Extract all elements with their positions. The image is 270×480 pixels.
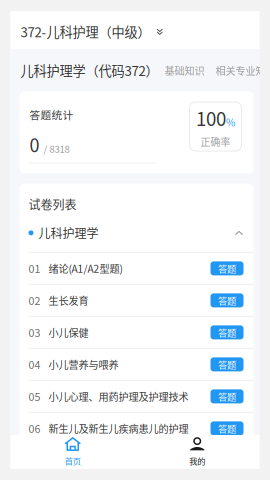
staticText: 03 (28, 325, 40, 340)
staticText: 小儿心理、用药护理及护理技术 (48, 389, 188, 404)
button[interactable]: 答题 (210, 325, 243, 339)
staticText: 正确率 (200, 134, 230, 149)
staticText: 答题统计 (29, 107, 73, 122)
staticText: 06 (28, 421, 40, 436)
staticText: 答题 (218, 326, 236, 339)
button[interactable]: 首页 (10, 435, 135, 469)
staticText: 相关专业知识 (215, 63, 270, 78)
button[interactable]: 答题 (210, 357, 243, 371)
button[interactable]: 相关专业知识 (215, 60, 270, 81)
staticText: 答题 (218, 262, 236, 275)
button[interactable]: 我的 (135, 435, 259, 469)
staticText: 首页 (65, 455, 81, 467)
staticText: 绪论(A1/A2型题) (48, 261, 122, 276)
button[interactable]: 答题 (210, 421, 243, 435)
staticText: 试卷列表 (28, 195, 76, 213)
staticText: 基础知识 (164, 63, 204, 78)
staticText: 04 (28, 357, 40, 372)
staticText: 儿科护理学 (38, 224, 98, 242)
button[interactable]: 372-儿科护理（中级） (10, 11, 259, 49)
staticText: 05 (28, 389, 40, 404)
button[interactable]: 02 (19, 285, 253, 316)
button[interactable]: 答题 (210, 293, 243, 307)
staticText: 我的 (189, 455, 205, 467)
button[interactable]: 基础知识 (164, 60, 204, 81)
button[interactable]: 06 (19, 413, 253, 444)
button[interactable]: 儿科护理学 (19, 223, 253, 243)
staticText: 答题 (218, 358, 236, 371)
staticText: 372-儿科护理（中级） (20, 22, 150, 41)
staticText: 100 (196, 104, 226, 131)
staticText: / 8318 (43, 142, 69, 155)
staticText: 答题 (218, 294, 236, 307)
button[interactable]: 答题 (210, 389, 243, 403)
staticText: 0 (29, 131, 39, 157)
button[interactable]: 答题 (210, 261, 243, 275)
button[interactable]: 01 (19, 253, 253, 284)
button[interactable]: 03 (19, 317, 253, 348)
staticText: % (226, 115, 235, 129)
staticText: 新生儿及新生儿疾病患儿的护理 (48, 421, 188, 436)
staticText: 答题 (218, 422, 236, 435)
staticText: 02 (28, 293, 40, 308)
button[interactable]: 04 (19, 349, 253, 380)
staticText: 小儿保健 (48, 325, 88, 340)
staticText: 答题 (218, 390, 236, 403)
staticText: 儿科护理学（代码372） (20, 61, 158, 80)
staticText: 生长发育 (48, 293, 88, 308)
button[interactable]: 05 (19, 381, 253, 412)
staticText: 小儿营养与喂养 (48, 357, 118, 372)
staticText: 01 (28, 261, 40, 276)
